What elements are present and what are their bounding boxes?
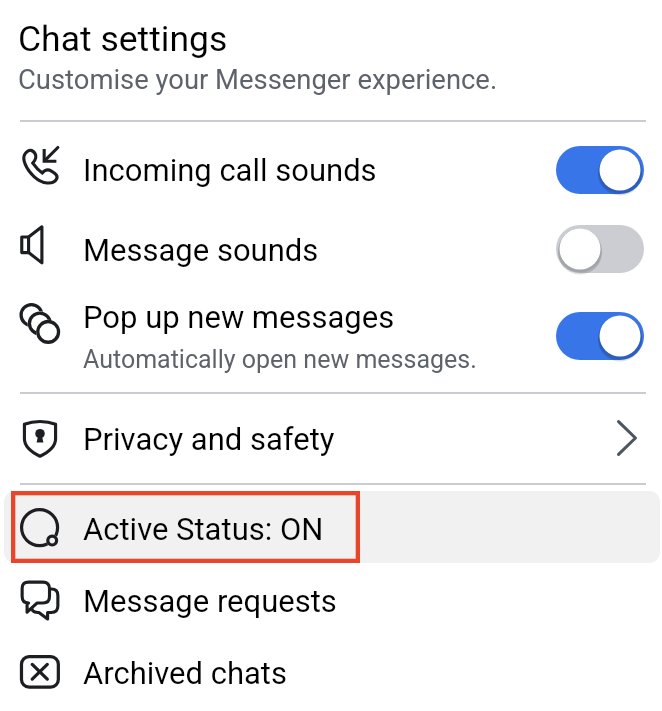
button[interactable]: Message sounds — [0, 214, 662, 284]
other: Message requests — [21, 581, 59, 619]
staticText: Chat settings — [18, 18, 228, 60]
button[interactable]: Pop up new messages — [0, 284, 662, 392]
button[interactable]: Switch on — [556, 312, 644, 360]
button[interactable]: Message requests — [0, 563, 662, 637]
button[interactable]: Privacy and safety — [0, 392, 662, 483]
other: Archived chats — [21, 653, 59, 691]
staticText: Incoming call sounds — [83, 152, 377, 188]
staticText: Customise your Messenger experience. — [18, 64, 498, 96]
staticText: Privacy and safety — [83, 421, 335, 457]
button[interactable]: Switch on — [556, 146, 644, 194]
other: Active status — [21, 508, 59, 546]
other: Incoming call — [21, 146, 59, 184]
button[interactable]: Archived chats — [0, 637, 662, 711]
staticText: Message sounds — [83, 232, 319, 268]
button[interactable]: Switch off — [556, 225, 644, 273]
other: Message sounds — [21, 226, 59, 264]
staticText: Archived chats — [83, 655, 288, 691]
button[interactable]: Active status — [0, 491, 662, 563]
button[interactable]: Incoming call — [0, 126, 662, 214]
staticText: Automatically open new messages. — [83, 345, 477, 374]
staticText: Active Status: ON — [83, 511, 324, 547]
staticText: Pop up new messages — [83, 299, 395, 335]
other: Pop up new messages — [21, 304, 59, 342]
staticText: Message requests — [83, 583, 337, 619]
other: Privacy and safety — [21, 419, 59, 457]
